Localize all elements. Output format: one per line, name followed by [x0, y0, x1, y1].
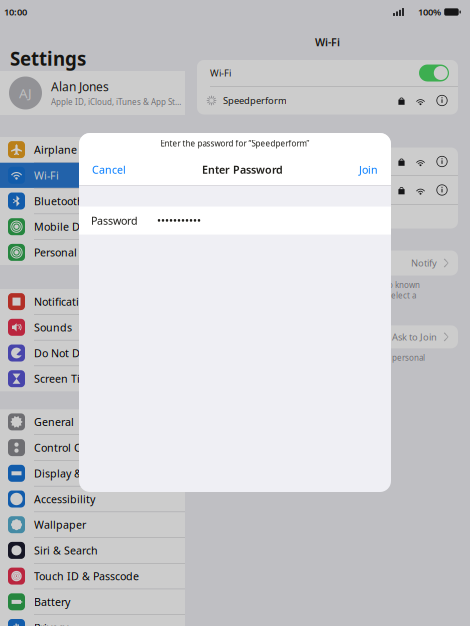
staticText: Mobile Data [34, 220, 96, 234]
staticText: Control Centre [34, 440, 108, 455]
staticText: Speedperform [223, 94, 287, 107]
staticText: Known networks will be joined automatica… [205, 279, 420, 311]
button[interactable]: Auto-Join Hotspot [197, 325, 458, 348]
staticText: Privacy [34, 620, 68, 626]
staticText: Notifications [34, 294, 97, 309]
button[interactable]: Other… [197, 204, 458, 228]
button[interactable]: Cancel [89, 162, 129, 177]
staticText: Cancel [92, 162, 126, 177]
staticText: Apple ID, iCloud, iTunes & App St… [51, 97, 181, 107]
button[interactable]: Battery [0, 589, 185, 614]
button[interactable]: Screen Time [0, 366, 185, 391]
staticText: Screen Time [34, 372, 96, 386]
staticText: Enter the password for “Speedperform” [160, 138, 309, 149]
button[interactable]: Display & Brightness [0, 461, 185, 486]
staticText: Alan Jones [51, 79, 109, 95]
button[interactable]: Do Not Disturb [0, 340, 185, 366]
button[interactable]: Wi-Fi [197, 60, 458, 86]
staticText: 10:00 [4, 6, 27, 18]
staticText: AJ [19, 84, 32, 102]
staticText: Accessibility [34, 492, 95, 506]
button[interactable]: Siri & Search [0, 538, 185, 563]
staticText: ••••••••••• [157, 213, 201, 228]
staticText: Touch ID & Passcode [34, 569, 139, 583]
staticText: General [34, 415, 74, 429]
button[interactable]: Control Centre [0, 435, 185, 460]
staticText: Password [91, 213, 138, 228]
button[interactable]: Tri-Band-Net [197, 147, 458, 175]
button[interactable]: Airplane Mode [0, 137, 185, 162]
staticText: Enter Password [202, 162, 283, 177]
button[interactable]: Personal Hotspot [0, 240, 185, 265]
staticText: Settings [10, 46, 86, 71]
staticText: BT-XH29KB [223, 184, 271, 196]
button[interactable]: Wi-Fi [0, 163, 185, 188]
staticText: 100% [418, 6, 441, 18]
staticText: Do Not Disturb [34, 346, 110, 360]
staticText: Wi-Fi [315, 35, 340, 49]
staticText: Ask to Join [392, 331, 437, 343]
button[interactable]: Mobile Data [0, 214, 185, 239]
staticText: Personal Hotspot [34, 245, 120, 259]
staticText: Wallpaper [34, 518, 86, 532]
button[interactable]: Join [356, 162, 381, 177]
staticText: Allow this device to automatically disco… [205, 352, 425, 374]
staticText: Display & Brightness [34, 466, 140, 480]
staticText: Battery [34, 595, 70, 609]
staticText: Bluetooth [34, 194, 84, 208]
staticText: Siri & Search [34, 543, 98, 557]
staticText: Notify [411, 257, 437, 269]
button[interactable]: General [0, 409, 185, 434]
button[interactable]: Ask to Join Networks [197, 250, 458, 275]
staticText: Wi-Fi [210, 67, 231, 79]
button[interactable]: Bluetooth [0, 188, 185, 214]
staticText: Sounds [34, 320, 72, 334]
staticText: Join [359, 162, 378, 177]
staticText: Wi-Fi [34, 168, 59, 182]
staticText: Airplane Mode [34, 142, 109, 157]
button[interactable]: Touch ID & Passcode [0, 563, 185, 589]
button[interactable]: AJ [0, 71, 185, 115]
button[interactable]: BT-XH29KB [197, 176, 458, 204]
button[interactable]: Sounds [0, 315, 185, 340]
button[interactable]: Privacy [0, 615, 185, 626]
staticText: Tri-Band-Net [223, 155, 278, 168]
button[interactable]: Notifications [0, 289, 185, 314]
button[interactable]: Accessibility [0, 486, 185, 512]
button[interactable]: Speedperform [197, 86, 458, 114]
button[interactable]: Wallpaper [0, 512, 185, 537]
